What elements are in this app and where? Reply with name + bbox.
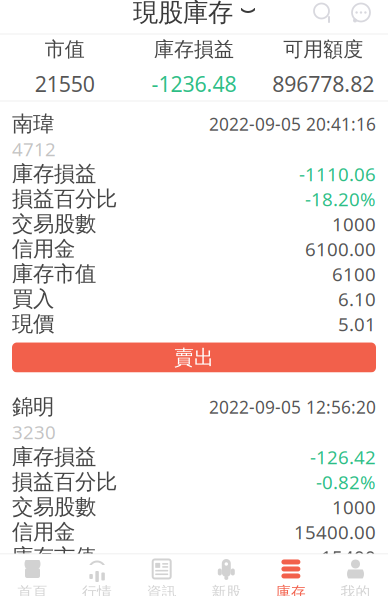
- staticText: 交易股數: [12, 211, 96, 237]
- staticText: 6.10: [338, 287, 376, 311]
- button[interactable]: Search: [304, 0, 342, 33]
- staticText: 15400.00: [294, 520, 376, 544]
- staticText: -0.82%: [316, 470, 376, 494]
- button[interactable]: 行情: [65, 554, 129, 596]
- staticText: 南瑋: [12, 111, 54, 137]
- button[interactable]: 新股: [194, 554, 259, 596]
- staticText: 21550: [35, 70, 95, 98]
- staticText: 交易股數: [12, 494, 96, 520]
- staticText: 損益百分比: [12, 469, 117, 495]
- staticText: 現價: [12, 311, 54, 337]
- staticText: 庫存: [276, 583, 306, 596]
- staticText: 15.27: [327, 595, 376, 596]
- staticText: 4712: [12, 137, 56, 161]
- staticText: 庫存市值: [12, 261, 96, 287]
- button[interactable]: 資訊: [129, 554, 194, 596]
- staticText: 庫存損益: [154, 37, 234, 62]
- staticText: 行情: [82, 583, 112, 596]
- staticText: -1110.06: [299, 162, 376, 186]
- staticText: 買入: [12, 286, 54, 312]
- staticText: 1000: [332, 495, 376, 519]
- button[interactable]: 我的: [323, 554, 388, 596]
- staticText: 15.40: [327, 570, 376, 594]
- staticText: 買入: [12, 569, 54, 595]
- staticText: 信用金: [12, 519, 75, 545]
- button[interactable]: 賣出: [12, 342, 376, 372]
- staticText: 首頁: [17, 583, 47, 596]
- staticText: 資訊: [147, 583, 177, 596]
- staticText: 15400: [321, 545, 376, 569]
- staticText: 3230: [12, 420, 56, 444]
- staticText: 2022-09-05 12:56:20: [209, 395, 376, 418]
- button[interactable]: 庫存: [259, 554, 323, 596]
- staticText: -126.42: [310, 445, 376, 469]
- staticText: 新股: [211, 583, 241, 596]
- staticText: 2022-09-05 20:41:16: [209, 112, 376, 135]
- staticText: -18.20%: [305, 187, 376, 211]
- staticText: 896778.82: [272, 70, 374, 98]
- staticText: 庫存損益: [12, 161, 96, 187]
- staticText: 賣出: [174, 345, 214, 370]
- button[interactable]: 首頁: [0, 554, 65, 596]
- staticText: 損益百分比: [12, 186, 117, 212]
- staticText: 6100: [332, 262, 376, 286]
- staticText: 錦明: [12, 394, 54, 420]
- staticText: 現股庫存: [133, 0, 233, 28]
- staticText: 現價: [12, 594, 54, 596]
- staticText: 6100.00: [305, 237, 376, 261]
- staticText: 5.01: [338, 312, 376, 336]
- staticText: 可用額度: [283, 37, 363, 62]
- button[interactable]: Messages: [342, 0, 380, 33]
- staticText: 信用金: [12, 236, 75, 262]
- staticText: 1000: [332, 212, 376, 236]
- staticText: 市值: [45, 37, 85, 62]
- staticText: 我的: [340, 583, 370, 596]
- staticText: 庫存損益: [12, 444, 96, 470]
- staticText: -1236.48: [151, 70, 236, 98]
- staticText: 庫存市值: [12, 544, 96, 570]
